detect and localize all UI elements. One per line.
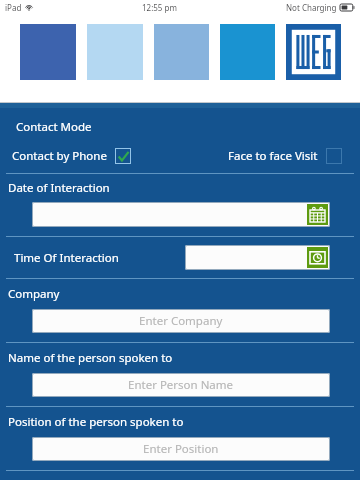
button[interactable]: Unchecked — [326, 148, 342, 164]
button[interactable]: Enter Company — [32, 309, 330, 333]
staticText: Contact by Phone — [12, 148, 107, 164]
button[interactable]: Pick date — [32, 202, 330, 227]
other: Pick time — [307, 247, 328, 268]
staticText: iPad — [5, 2, 22, 13]
staticText: Name of the person spoken to — [8, 350, 173, 366]
other: Pick date — [307, 204, 328, 225]
staticText: Contact Mode — [16, 119, 92, 135]
staticText: Not Charging — [286, 2, 337, 13]
staticText: Date of Interaction — [8, 180, 110, 196]
button[interactable]: Enter Person Name — [32, 373, 330, 397]
staticText: Enter Company — [139, 313, 223, 329]
staticText: Position of the person spoken to — [8, 414, 184, 430]
button[interactable]: Checked — [115, 148, 131, 164]
staticText: Face to face Visit — [228, 148, 318, 164]
button[interactable]: Enter Position — [32, 437, 330, 461]
button[interactable]: Pick time — [185, 245, 330, 270]
staticText: Company — [8, 286, 60, 302]
staticText: Enter Position — [143, 441, 219, 457]
staticText: Enter Person Name — [128, 377, 234, 393]
staticText: 12:55 pm — [142, 2, 177, 13]
button[interactable]: Contact by Phone — [12, 148, 131, 164]
button[interactable]: Face to face Visit — [228, 148, 342, 164]
staticText: Time Of Interaction — [14, 250, 119, 266]
